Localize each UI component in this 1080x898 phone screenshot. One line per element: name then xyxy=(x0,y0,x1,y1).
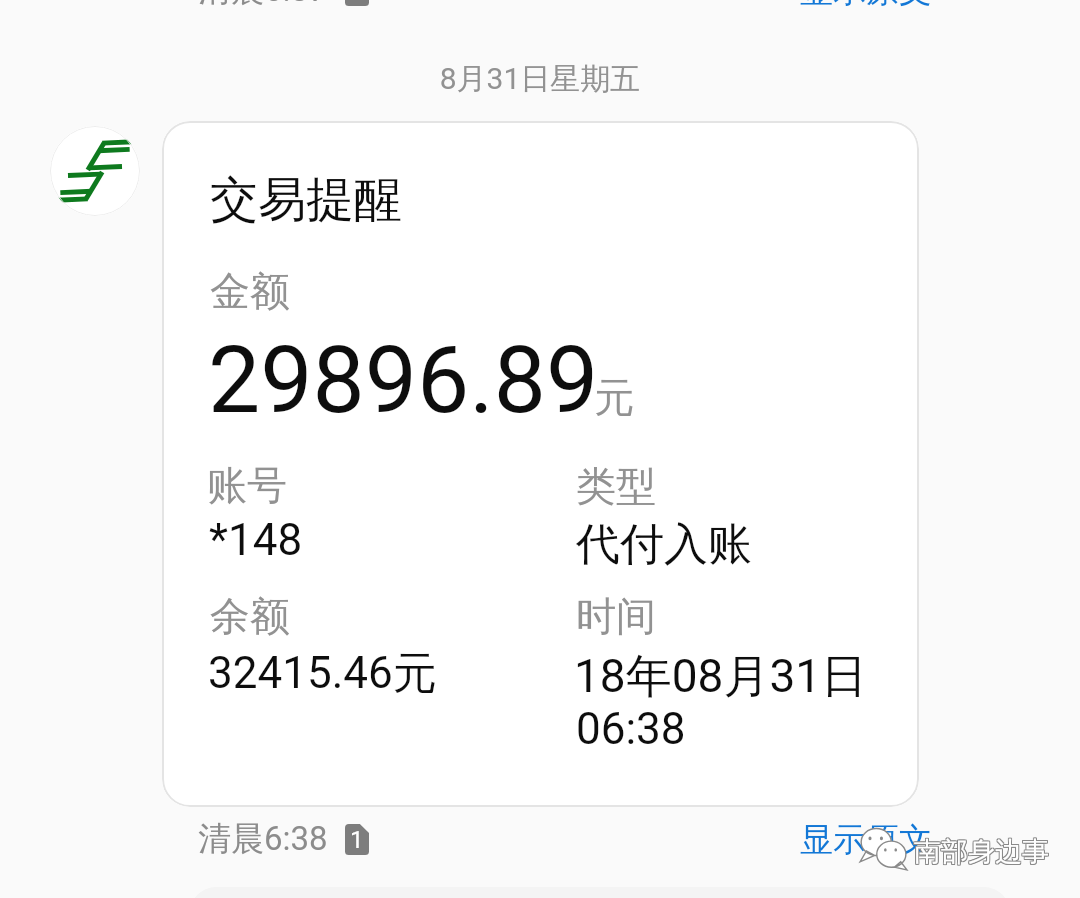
staticText: 交易提醒 xyxy=(210,170,402,230)
staticText: 29896.89 xyxy=(208,326,599,435)
staticText: 代付入账 xyxy=(576,517,752,572)
staticText: 南部身边事 xyxy=(913,836,1048,870)
button[interactable]: 交易提醒 xyxy=(162,121,919,807)
staticText: 8月31日星期五 xyxy=(0,60,1080,98)
button[interactable]: 显示原文 xyxy=(800,819,932,861)
staticText: 南部身边事 xyxy=(915,836,1050,870)
staticText: 06:38 xyxy=(576,703,686,755)
staticText: 时间 xyxy=(576,591,656,641)
staticText: 南部身边事 xyxy=(915,835,1050,869)
staticText: 清晨6:37 xyxy=(198,0,328,11)
staticText: *148 xyxy=(209,514,303,566)
button[interactable]: 显示原文 xyxy=(800,0,932,12)
staticText: 账号 xyxy=(207,460,287,510)
staticText: 南部身边事 xyxy=(914,835,1049,869)
staticText: 金额 xyxy=(210,266,290,316)
button[interactable]: 清晨6:37 xyxy=(198,0,369,11)
staticText: 南部身边事 xyxy=(913,835,1048,869)
staticText: 32415.46元 xyxy=(208,646,437,701)
staticText: 显示原文 xyxy=(800,819,932,861)
staticText: 1 xyxy=(350,826,364,854)
staticText: 类型 xyxy=(576,461,656,511)
button[interactable]: 清晨6:38 xyxy=(198,818,369,860)
staticText: 显示原文 xyxy=(800,0,932,12)
staticText: 清晨6:38 xyxy=(198,818,328,860)
staticText: 南部身边事 xyxy=(914,834,1049,868)
button[interactable]: China Post Savings Bank avatar xyxy=(50,126,140,216)
staticText: 南部身边事 xyxy=(915,834,1050,868)
staticText: 元 xyxy=(594,372,634,422)
staticText: 南部身边事 xyxy=(914,836,1049,870)
staticText: 余额 xyxy=(210,591,290,641)
staticText: 18年08月31日 xyxy=(574,648,868,706)
staticText: 南部身边事 xyxy=(913,834,1048,868)
